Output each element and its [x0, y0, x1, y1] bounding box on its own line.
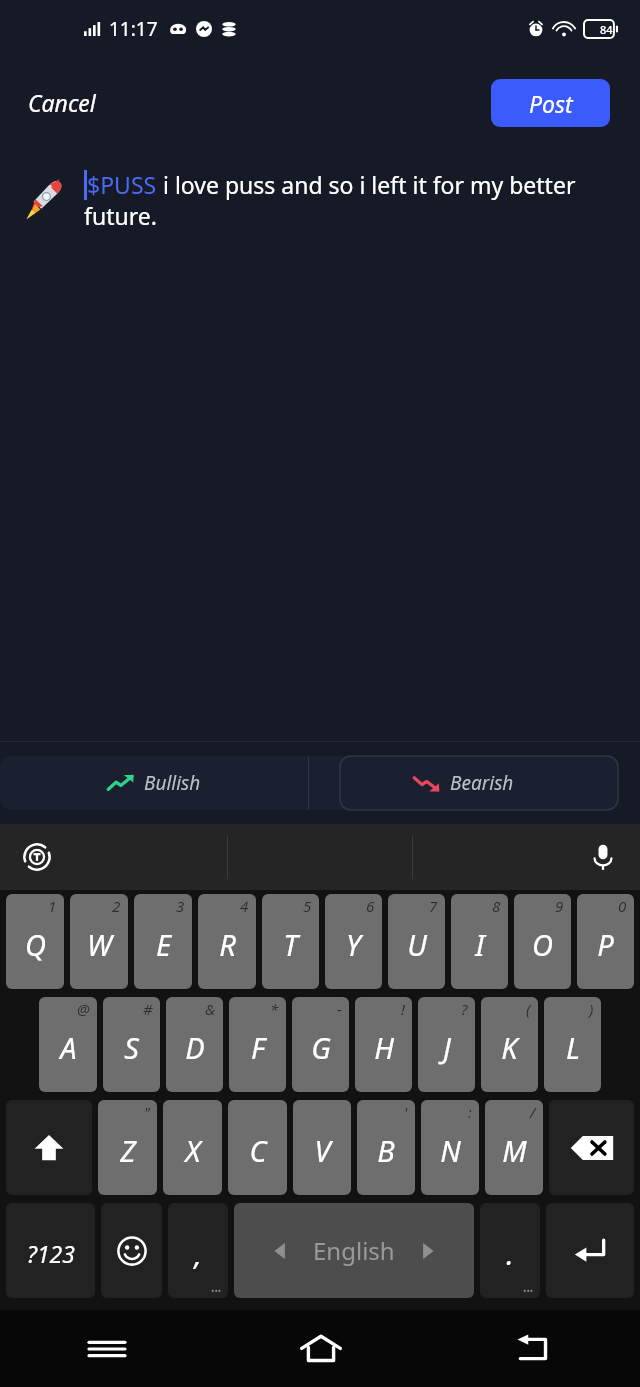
button[interactable]: (: [481, 997, 538, 1092]
staticText: A: [60, 1028, 77, 1067]
button[interactable]: X: [163, 1100, 222, 1195]
staticText: C: [249, 1131, 267, 1170]
button[interactable]: English: [234, 1203, 474, 1298]
button[interactable]: Backspace: [549, 1100, 634, 1195]
staticText: English: [313, 1234, 395, 1267]
staticText: *: [270, 999, 279, 1019]
button[interactable]: !: [355, 997, 412, 1092]
staticText: G: [311, 1028, 331, 1067]
button[interactable]: 4: [198, 894, 256, 989]
staticText: F: [251, 1028, 265, 1067]
button[interactable]: &: [166, 997, 223, 1092]
button[interactable]: #: [103, 997, 160, 1092]
staticText: .: [506, 1234, 514, 1273]
staticText: •••: [211, 1284, 222, 1296]
button[interactable]: Back: [427, 1310, 640, 1387]
button[interactable]: 1: [6, 894, 64, 989]
staticText: Bullish: [144, 770, 201, 796]
button[interactable]: 8: [451, 894, 508, 989]
button[interactable]: Bearish: [309, 756, 618, 810]
button[interactable]: V: [293, 1100, 351, 1195]
button[interactable]: •••: [168, 1203, 228, 1298]
button[interactable]: Toggle text tools: [14, 834, 60, 880]
button[interactable]: 5: [262, 894, 319, 989]
button[interactable]: ': [357, 1100, 415, 1195]
staticText: O: [532, 925, 553, 964]
button[interactable]: Post: [491, 79, 610, 127]
button[interactable]: Add GIF: [90, 761, 134, 805]
staticText: V: [314, 1131, 331, 1170]
button[interactable]: 3: [134, 894, 192, 989]
button[interactable]: Shift: [6, 1100, 92, 1195]
staticText: •••: [523, 1284, 534, 1296]
button[interactable]: @: [39, 997, 97, 1092]
staticText: future.: [84, 200, 157, 231]
staticText: 4: [240, 896, 249, 916]
staticText: Y: [346, 925, 361, 964]
button[interactable]: ): [544, 997, 601, 1092]
staticText: 9: [555, 896, 564, 916]
staticText: 11:17: [109, 16, 158, 42]
staticText: Bearish: [450, 770, 514, 796]
staticText: M: [502, 1131, 527, 1170]
staticText: 1: [48, 896, 57, 916]
button[interactable]: ?: [418, 997, 475, 1092]
button[interactable]: 0: [577, 894, 634, 989]
staticText: ?123: [27, 1238, 75, 1269]
staticText: (: [526, 999, 531, 1019]
staticText: J: [443, 1028, 451, 1067]
button[interactable]: ?123: [6, 1203, 95, 1298]
staticText: #: [143, 999, 153, 1019]
staticText: W: [87, 925, 112, 964]
button[interactable]: Emoji: [101, 1203, 162, 1298]
staticText: P: [597, 925, 614, 964]
button[interactable]: :: [421, 1100, 479, 1195]
staticText: ): [589, 999, 594, 1019]
staticText: 3: [176, 896, 185, 916]
button[interactable]: •••: [480, 1203, 540, 1298]
button[interactable]: 9: [514, 894, 571, 989]
staticText: -: [337, 999, 342, 1019]
staticText: 7: [429, 896, 438, 916]
button[interactable]: Home: [214, 1310, 427, 1387]
staticText: R: [219, 925, 236, 964]
staticText: 0: [618, 896, 627, 916]
staticText: I: [475, 925, 485, 964]
staticText: S: [124, 1028, 139, 1067]
staticText: ?: [461, 999, 468, 1019]
staticText: :: [468, 1102, 472, 1122]
staticText: Cancel: [28, 87, 96, 118]
button[interactable]: Enter: [546, 1203, 634, 1298]
button[interactable]: 2: [70, 894, 128, 989]
staticText: 84: [600, 22, 613, 37]
button[interactable]: 7: [388, 894, 445, 989]
button[interactable]: C: [228, 1100, 287, 1195]
button[interactable]: ": [98, 1100, 157, 1195]
button[interactable]: Voice input: [580, 834, 626, 880]
button[interactable]: Bullish: [0, 756, 308, 810]
button[interactable]: -: [292, 997, 349, 1092]
staticText: H: [374, 1028, 394, 1067]
staticText: ,: [194, 1234, 202, 1273]
button[interactable]: Recent apps: [0, 1310, 214, 1387]
staticText: ": [144, 1102, 150, 1122]
staticText: T: [283, 925, 298, 964]
button[interactable]: Cancel: [14, 79, 110, 126]
staticText: Q: [25, 925, 46, 964]
staticText: $PUSS: [87, 169, 157, 200]
staticText: 5: [303, 896, 312, 916]
staticText: Post: [529, 88, 573, 119]
button[interactable]: Add hashtag: [156, 761, 200, 805]
staticText: i love puss and so i left it for my bett…: [157, 169, 576, 200]
button[interactable]: *: [229, 997, 286, 1092]
staticText: N: [440, 1131, 461, 1170]
staticText: D: [185, 1028, 205, 1067]
button[interactable]: /: [485, 1100, 543, 1195]
staticText: U: [407, 925, 427, 964]
button[interactable]: 6: [325, 894, 382, 989]
staticText: @: [77, 999, 90, 1019]
staticText: 8: [492, 896, 501, 916]
staticText: /: [530, 1102, 536, 1122]
